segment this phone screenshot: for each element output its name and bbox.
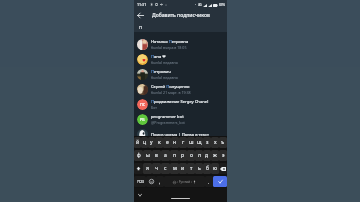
staticText: ч bbox=[155, 165, 158, 172]
button[interactable]: Hide keyboard bbox=[136, 191, 143, 198]
staticText: ш bbox=[189, 139, 194, 146]
button[interactable]: в bbox=[152, 150, 161, 161]
staticText: к bbox=[158, 139, 161, 146]
button[interactable]: щ bbox=[195, 137, 203, 148]
button[interactable]: я bbox=[143, 163, 152, 174]
button[interactable]: ш bbox=[187, 137, 195, 148]
staticText: б bbox=[206, 165, 209, 172]
staticText: 83% bbox=[219, 3, 225, 7]
staticText: , bbox=[159, 179, 161, 185]
staticText: о bbox=[190, 152, 193, 159]
staticText: ф bbox=[137, 152, 141, 159]
button[interactable]: ю bbox=[211, 163, 219, 174]
button[interactable]: Backspace bbox=[219, 163, 227, 174]
staticText: ‹ Русский › bbox=[177, 180, 192, 184]
button[interactable]: Symbols bbox=[134, 176, 146, 187]
button[interactable]: л bbox=[195, 150, 203, 161]
staticText: н bbox=[173, 139, 177, 146]
button[interactable]: Enter bbox=[213, 176, 227, 187]
staticText: • bbox=[195, 3, 197, 7]
button[interactable]: Сергей Полущенко bbox=[134, 82, 227, 97]
button[interactable]: ъ bbox=[219, 137, 227, 148]
staticText: Наталья Петровна bbox=[151, 39, 189, 45]
button[interactable]: ц bbox=[141, 137, 148, 148]
button[interactable]: Emoji bbox=[146, 176, 156, 187]
button[interactable]: к bbox=[155, 137, 163, 148]
button[interactable]: ж bbox=[211, 150, 219, 161]
staticText: Папа ❤ bbox=[151, 54, 166, 60]
button[interactable]: РБ bbox=[134, 112, 227, 127]
staticText: ы bbox=[146, 152, 150, 159]
staticText: был(а) вчера в 18:05 bbox=[151, 45, 187, 50]
staticText: ПС bbox=[140, 102, 146, 107]
staticText: я bbox=[146, 165, 149, 172]
staticText: Бот bbox=[151, 105, 157, 110]
button[interactable]: з bbox=[203, 137, 211, 148]
staticText: Поиск чрема | Папка в текст bbox=[151, 132, 210, 138]
button[interactable]: Папа ❤ bbox=[134, 52, 227, 67]
button[interactable]: ПС bbox=[134, 97, 227, 112]
button[interactable]: ы bbox=[143, 150, 152, 161]
staticText: а bbox=[164, 152, 167, 159]
button[interactable]: а bbox=[161, 150, 170, 161]
button[interactable]: ф bbox=[134, 150, 143, 161]
button[interactable]: б bbox=[203, 163, 211, 174]
button[interactable]: у bbox=[148, 137, 155, 148]
staticText: с bbox=[164, 165, 167, 172]
staticText: 11:31 bbox=[137, 2, 147, 7]
staticText: л bbox=[198, 152, 201, 159]
staticText: Продвижение Sergey Chanel bbox=[151, 99, 209, 105]
staticText: . bbox=[208, 179, 210, 185]
staticText: ?123 bbox=[137, 180, 144, 184]
staticText: Петрович bbox=[151, 69, 171, 75]
button[interactable]: о bbox=[187, 150, 195, 161]
staticText: ц bbox=[143, 139, 147, 146]
staticText: ъ bbox=[221, 139, 225, 146]
staticText: ю bbox=[213, 165, 217, 172]
staticText: е bbox=[166, 139, 169, 146]
staticText: щ bbox=[197, 139, 202, 146]
button[interactable]: э bbox=[219, 150, 227, 161]
staticText: ь bbox=[198, 165, 201, 172]
staticText: был(а) недавно bbox=[151, 75, 178, 80]
staticText: п bbox=[173, 152, 177, 159]
button[interactable]: , bbox=[156, 176, 164, 187]
staticText: ж bbox=[213, 152, 217, 159]
staticText: был(а) недавно bbox=[151, 60, 178, 65]
button[interactable]: ь bbox=[195, 163, 203, 174]
button[interactable]: Петрович bbox=[134, 67, 227, 82]
button[interactable]: й bbox=[134, 137, 141, 148]
button[interactable]: е bbox=[163, 137, 171, 148]
button[interactable]: Shift bbox=[134, 163, 143, 174]
button[interactable]: Наталья Петровна bbox=[134, 37, 227, 52]
button[interactable]: т bbox=[187, 163, 195, 174]
button[interactable]: д bbox=[203, 150, 211, 161]
button[interactable]: . bbox=[205, 176, 213, 187]
staticText: г bbox=[182, 139, 185, 146]
button[interactable]: н bbox=[171, 137, 179, 148]
staticText: Сергей Полущенко bbox=[151, 84, 190, 90]
staticText: в bbox=[155, 152, 158, 159]
button[interactable]: Поиск чрема | Папка в текст bbox=[134, 127, 227, 142]
staticText: у bbox=[150, 139, 153, 146]
staticText: п bbox=[139, 24, 143, 31]
button[interactable]: Space bbox=[164, 176, 205, 187]
staticText: Добавить подписчиков bbox=[152, 12, 210, 19]
staticText: д bbox=[205, 152, 209, 159]
button[interactable]: и bbox=[179, 163, 187, 174]
staticText: р bbox=[181, 152, 185, 159]
button[interactable]: ч bbox=[152, 163, 161, 174]
button[interactable]: г bbox=[179, 137, 187, 148]
button[interactable]: р bbox=[179, 150, 187, 161]
button[interactable]: х bbox=[211, 137, 219, 148]
staticText: м bbox=[173, 165, 177, 172]
staticText: 4G bbox=[198, 3, 202, 7]
staticText: programmer bot bbox=[151, 114, 184, 120]
button[interactable]: п bbox=[170, 150, 179, 161]
button[interactable]: с bbox=[161, 163, 170, 174]
staticText: й bbox=[136, 139, 140, 146]
button[interactable]: Back bbox=[134, 9, 147, 22]
staticText: РБ bbox=[140, 117, 145, 122]
button[interactable]: м bbox=[170, 163, 179, 174]
staticText: з bbox=[206, 139, 209, 146]
